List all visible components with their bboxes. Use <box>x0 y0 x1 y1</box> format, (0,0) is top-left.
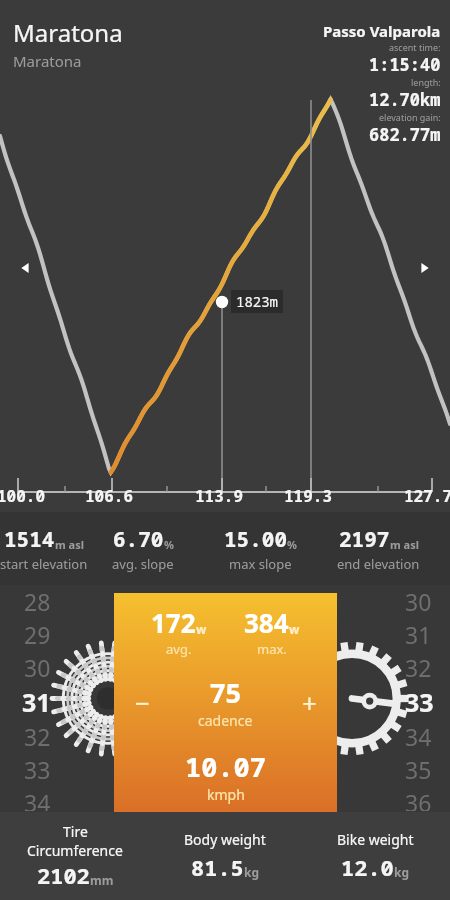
staticText: 10.07 <box>185 748 266 785</box>
staticText: start elevation <box>0 555 88 573</box>
staticText: 15.00 <box>224 525 287 554</box>
button[interactable]: 28 <box>22 585 51 812</box>
staticText: − <box>135 685 150 720</box>
button[interactable]: Bike weight <box>300 812 450 900</box>
staticText: 2197 <box>339 525 390 554</box>
button[interactable]: Increase cadence <box>281 675 337 729</box>
staticText: 32 <box>24 721 51 752</box>
staticText: 36 <box>405 787 432 811</box>
button[interactable]: Previous climb <box>13 255 39 281</box>
staticText: m asl <box>55 537 84 552</box>
button[interactable]: Body weight <box>150 812 300 900</box>
staticText: 172 <box>151 605 196 640</box>
button[interactable]: Decrease cadence <box>114 675 170 729</box>
staticText: 33 <box>405 685 434 719</box>
staticText: % <box>287 537 297 552</box>
staticText: 28 <box>24 586 51 617</box>
staticText: elevation gain: <box>379 111 441 123</box>
staticText: 30 <box>405 586 432 617</box>
staticText: avg. <box>166 640 192 658</box>
staticText: Body weight <box>184 830 266 849</box>
staticText: end elevation <box>337 555 420 573</box>
staticText: Maratona <box>13 16 123 49</box>
staticText: 1:15:40 <box>369 53 441 76</box>
staticText: m asl <box>390 537 419 552</box>
button[interactable]: Tire <box>0 812 150 900</box>
staticText: kg <box>394 864 410 880</box>
staticText: % <box>164 537 174 552</box>
button[interactable]: 1514 <box>0 512 88 585</box>
staticText: 34 <box>405 721 432 752</box>
staticText: 2102 <box>37 860 90 890</box>
staticText: 682.77m <box>369 123 441 146</box>
staticText: 12.70km <box>369 88 441 111</box>
staticText: ascent time: <box>389 41 441 53</box>
staticText: Passo Valparola <box>323 21 441 41</box>
staticText: 34 <box>24 787 51 811</box>
staticText: 12.0 <box>341 852 394 882</box>
staticText: 81.5 <box>191 852 244 882</box>
staticText: 100.0 <box>0 485 46 507</box>
staticText: 113.9 <box>195 485 244 507</box>
staticText: 35 <box>405 754 432 785</box>
staticText: 1514 <box>4 525 55 554</box>
staticText: kg <box>244 864 260 880</box>
staticText: avg. slope <box>112 555 174 573</box>
staticText: Circumference <box>27 841 123 860</box>
staticText: 31 <box>405 619 432 650</box>
staticText: w <box>289 621 300 637</box>
staticText: 29 <box>24 619 51 650</box>
staticText: cadence <box>198 711 253 730</box>
staticText: max slope <box>229 555 292 573</box>
staticText: max. <box>257 640 287 658</box>
staticText: 127.7 <box>404 485 450 507</box>
staticText: w <box>196 621 207 637</box>
staticText: 32 <box>405 652 432 683</box>
staticText: 6.70 <box>113 525 164 554</box>
staticText: 31 <box>22 685 51 719</box>
button[interactable]: 172 <box>114 593 337 812</box>
staticText: mm <box>90 872 114 888</box>
button[interactable]: 15.00 <box>224 512 297 585</box>
staticText: Maratona <box>13 51 82 71</box>
button[interactable]: Next climb <box>411 255 437 281</box>
staticText: 106.6 <box>85 485 134 507</box>
button[interactable]: 2197 <box>337 512 420 585</box>
staticText: Bike weight <box>337 830 414 849</box>
staticText: Tire <box>63 822 88 841</box>
staticText: kmph <box>207 785 245 804</box>
staticText: 119.3 <box>284 485 333 507</box>
staticText: 30 <box>24 652 51 683</box>
staticText: 384 <box>244 605 289 640</box>
staticText: + <box>302 685 317 720</box>
staticText: length: <box>411 76 441 88</box>
staticText: 33 <box>24 754 51 785</box>
staticText: 1823m <box>236 292 278 311</box>
staticText: 75 <box>210 674 241 711</box>
button[interactable]: 30 <box>405 585 434 812</box>
button[interactable]: 6.70 <box>112 512 174 585</box>
